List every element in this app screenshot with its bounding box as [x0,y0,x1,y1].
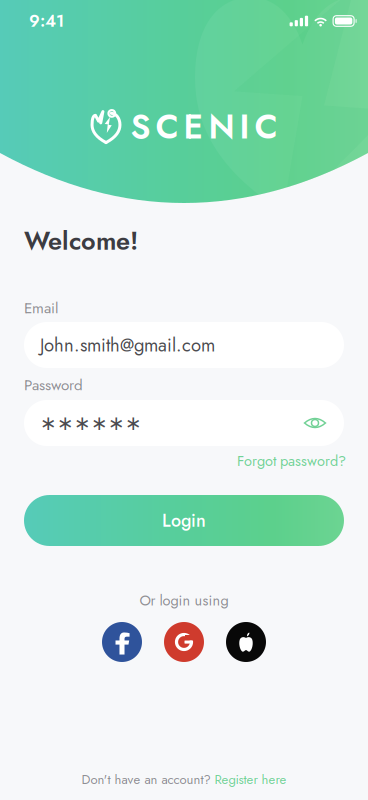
staticText: 9:41 [29,9,64,33]
staticText: ∗∗∗∗∗∗ [40,411,142,435]
button[interactable]: Register here [214,770,286,789]
button[interactable]: Log in with Google [164,622,204,662]
staticText: Register here [214,770,286,789]
button[interactable]: Log in with Facebook [102,622,142,662]
staticText: Email [24,297,58,319]
staticText: Password [24,374,83,396]
button[interactable]: Forgot password? [237,452,346,470]
staticText: SCENIC [130,103,277,151]
staticText: Welcome! [24,223,138,259]
button[interactable]: Login [0,495,368,546]
staticText: Don't have an account? [81,770,214,789]
staticText: Or login using [139,590,228,611]
button[interactable]: Show password [300,408,330,438]
staticText: John.smith@gmail.com [40,332,215,358]
staticText: Login [162,508,206,533]
button[interactable]: Log in with Apple [226,622,266,662]
staticText: Forgot password? [237,450,346,471]
